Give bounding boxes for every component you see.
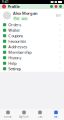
staticText: Pro (14, 17, 19, 20)
staticText: Addresses (8, 44, 27, 49)
button[interactable]: Favourites (0, 38, 64, 44)
staticText: Me (54, 115, 58, 118)
staticText: > (59, 28, 61, 32)
staticText: > (59, 23, 61, 26)
staticText: > (59, 34, 61, 37)
staticText: Help (8, 61, 16, 66)
staticText: Coupons (8, 33, 23, 38)
staticText: > (59, 39, 61, 43)
staticText: > (59, 67, 61, 70)
staticText: Alex Morgan (13, 11, 38, 16)
staticText: > (59, 56, 61, 59)
button[interactable]: Explore (16, 111, 32, 118)
staticText: > (59, 50, 61, 54)
staticText: Settings (8, 66, 21, 71)
button[interactable]: Coupons (0, 33, 64, 38)
button[interactable]: Orders (0, 22, 64, 27)
button[interactable]: Home (0, 111, 16, 118)
button[interactable]: Help (0, 60, 64, 66)
staticText: Edit (56, 14, 61, 17)
button[interactable]: Notifications (54, 5, 57, 8)
staticText: Explore (19, 115, 29, 118)
staticText: History (8, 55, 21, 60)
button[interactable]: Membership (0, 49, 64, 55)
button[interactable]: Addresses (0, 44, 64, 49)
staticText: Profile (7, 4, 19, 9)
staticText: 9:41 (2, 0, 9, 4)
button[interactable]: Settings (59, 5, 62, 8)
staticText: Lv.8 (22, 17, 27, 20)
button[interactable]: Cart (32, 111, 48, 118)
button[interactable]: Me (48, 111, 64, 118)
staticText: Favourites (8, 39, 26, 44)
staticText: Home (4, 115, 12, 118)
staticText: Cart (37, 115, 42, 118)
button[interactable]: Wallet (0, 27, 64, 33)
staticText: > (59, 45, 61, 48)
staticText: Orders (8, 22, 21, 27)
button[interactable]: Scan (50, 5, 53, 8)
staticText: Wallet (8, 28, 19, 33)
button[interactable]: History (0, 55, 64, 60)
staticText: Membership (8, 50, 31, 55)
staticText: > (59, 61, 61, 65)
button[interactable]: Settings (0, 66, 64, 71)
